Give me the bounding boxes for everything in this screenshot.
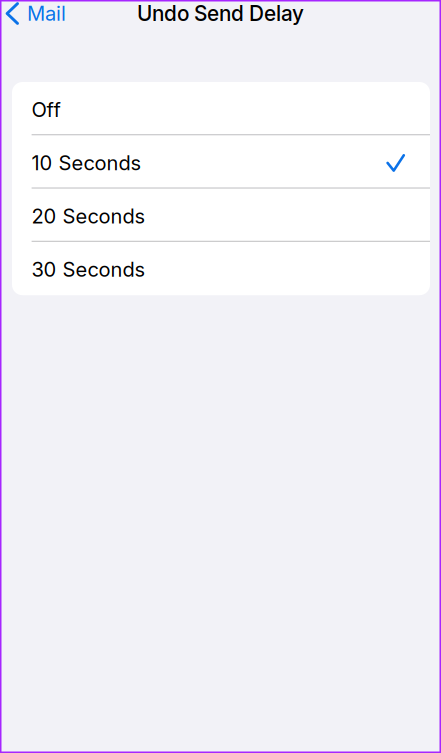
staticText: Undo Send Delay: [137, 1, 304, 26]
staticText: 30 Seconds: [32, 257, 146, 282]
button[interactable]: 10 Seconds: [12, 135, 430, 189]
staticText: 10 Seconds: [32, 151, 142, 175]
button[interactable]: 30 Seconds: [12, 242, 430, 295]
staticText: 20 Seconds: [32, 204, 146, 228]
staticText: Off: [32, 97, 61, 122]
button[interactable]: Off: [12, 82, 430, 135]
button[interactable]: 20 Seconds: [12, 189, 430, 242]
button[interactable]: Mail: [0, 0, 66, 27]
staticText: Mail: [27, 1, 66, 26]
